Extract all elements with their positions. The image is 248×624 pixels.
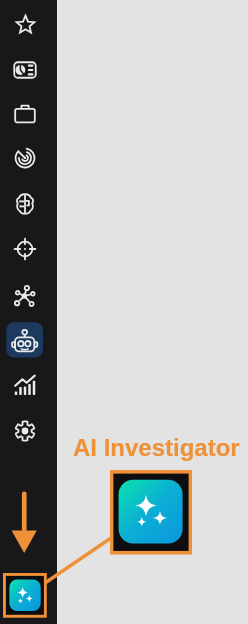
button[interactable]: AI Investigator app icon xyxy=(110,470,192,555)
button[interactable]: Cases xyxy=(3,92,47,136)
button[interactable]: Settings xyxy=(3,409,47,453)
button[interactable]: Favourites xyxy=(3,3,47,47)
button[interactable]: AI Investigator xyxy=(3,573,47,618)
staticText: AI Investigator xyxy=(73,434,240,461)
button[interactable]: AI Agent xyxy=(3,322,47,366)
button[interactable]: Insights xyxy=(3,182,47,226)
button[interactable]: Targets xyxy=(3,227,47,271)
button[interactable]: Radar xyxy=(3,136,47,180)
button[interactable]: Network xyxy=(3,274,47,318)
button[interactable]: Analytics xyxy=(3,364,47,408)
button[interactable]: Dashboard xyxy=(3,48,47,92)
